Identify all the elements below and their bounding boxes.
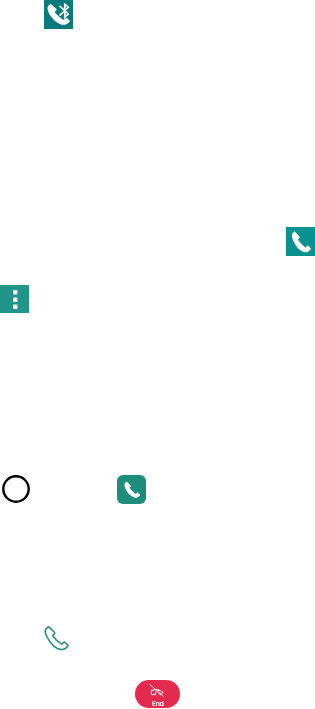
button[interactable]: End [135, 680, 180, 708]
button[interactable]: Call [286, 227, 315, 256]
button[interactable]: More options [0, 285, 29, 313]
button[interactable]: Bluetooth call [44, 0, 73, 29]
staticText: End [152, 699, 164, 708]
button[interactable]: Record [2, 475, 30, 503]
button[interactable]: Phone [117, 475, 146, 504]
button[interactable]: Call [44, 626, 69, 651]
